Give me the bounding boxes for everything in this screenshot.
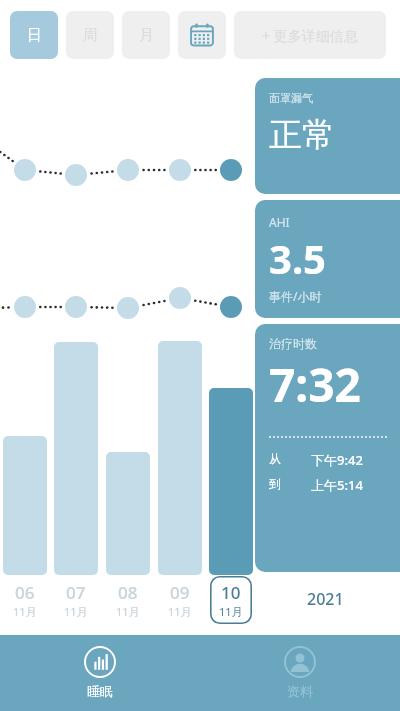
staticText: 资料 xyxy=(287,683,313,699)
staticText: 11月 xyxy=(64,604,88,619)
staticText: 7:32 xyxy=(269,353,361,416)
staticText: 11月 xyxy=(116,604,140,619)
button[interactable]: AHI xyxy=(255,200,400,318)
staticText: 日 xyxy=(27,26,42,45)
staticText: 07 xyxy=(66,581,86,604)
staticText: + 更多详细信息 xyxy=(262,26,358,45)
staticText: 周 xyxy=(83,26,98,45)
staticText: 正常 xyxy=(269,114,335,156)
staticText: 下午9:42 xyxy=(311,451,363,469)
button[interactable]: 月 xyxy=(122,11,170,59)
staticText: 08 xyxy=(118,581,138,604)
button[interactable]: Calendar xyxy=(178,11,226,59)
staticText: 睡眠 xyxy=(87,683,113,699)
button[interactable]: 日 xyxy=(10,11,58,59)
staticText: 09 xyxy=(170,581,190,604)
button[interactable]: 睡眠 xyxy=(0,635,200,711)
staticText: 2021 xyxy=(307,588,344,610)
button[interactable]: 10 xyxy=(210,576,252,624)
button[interactable]: 资料 xyxy=(200,635,400,711)
staticText: 11月 xyxy=(168,604,192,619)
staticText: 11月 xyxy=(13,604,37,619)
staticText: 事件/小时 xyxy=(269,288,322,304)
staticText: 面罩漏气 xyxy=(269,91,313,105)
staticText: 月 xyxy=(139,26,154,45)
staticText: 到 xyxy=(269,476,281,491)
staticText: 06 xyxy=(15,581,35,604)
staticText: 治疗时数 xyxy=(269,336,317,351)
button[interactable]: 07 xyxy=(55,576,97,624)
button[interactable]: 09 xyxy=(159,576,201,624)
staticText: 11月 xyxy=(219,604,243,619)
button[interactable]: 06 xyxy=(4,576,46,624)
button[interactable]: 08 xyxy=(107,576,149,624)
button[interactable]: 面罩漏气 xyxy=(255,78,400,194)
staticText: AHI xyxy=(269,214,290,230)
button[interactable]: + 更多详细信息 xyxy=(234,11,386,59)
staticText: 上午5:14 xyxy=(311,476,363,494)
staticText: 10 xyxy=(221,581,241,604)
button[interactable]: 周 xyxy=(66,11,114,59)
button[interactable]: 治疗时数 xyxy=(255,324,400,572)
staticText: 3.5 xyxy=(269,231,326,285)
staticText: 从 xyxy=(269,451,281,466)
